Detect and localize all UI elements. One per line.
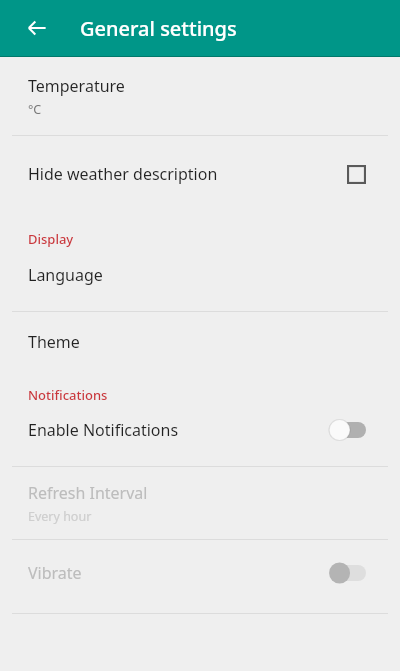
button[interactable]: Back (15, 6, 59, 50)
staticText: Notifications (28, 386, 108, 404)
staticText: Every hour (28, 508, 92, 525)
button[interactable]: Refresh Interval (0, 467, 400, 539)
button[interactable]: Enable Notifications (0, 404, 400, 456)
staticText: Display (28, 230, 74, 248)
button[interactable]: Vibrate (0, 540, 400, 606)
button[interactable]: Hide weather description (0, 136, 400, 212)
button[interactable]: Toggle (322, 554, 376, 592)
staticText: °C (28, 101, 42, 118)
staticText: Language (28, 264, 376, 286)
staticText: Hide weather description (28, 163, 336, 185)
button[interactable]: Language (0, 248, 400, 302)
button[interactable]: Hide weather description checkbox (336, 154, 376, 194)
staticText: General settings (80, 15, 237, 42)
staticText: Enable Notifications (28, 419, 322, 441)
staticText: Vibrate (28, 562, 322, 584)
staticText: Temperature (28, 75, 125, 97)
staticText: Theme (28, 331, 376, 353)
button[interactable]: Toggle (322, 411, 376, 449)
staticText: Refresh Interval (28, 482, 148, 504)
button[interactable]: Temperature (0, 57, 400, 135)
button[interactable]: Theme (0, 312, 400, 372)
